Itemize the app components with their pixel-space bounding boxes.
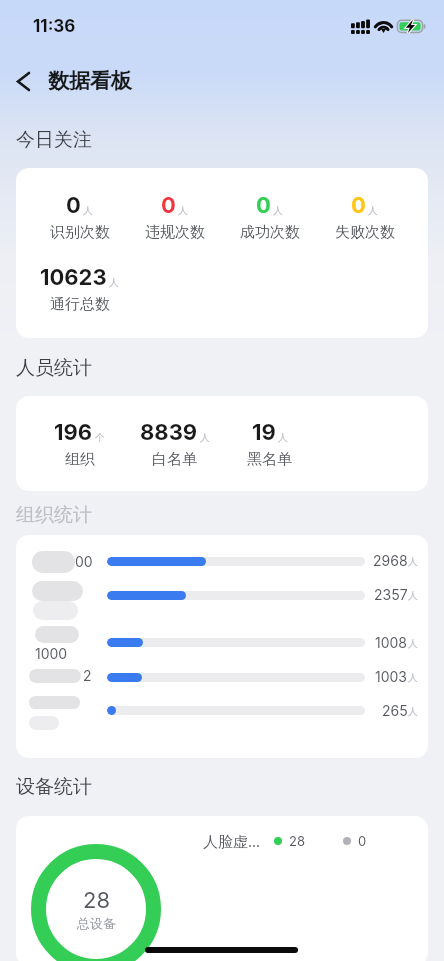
staticText: 组织 xyxy=(65,450,95,469)
staticText: 0 xyxy=(256,192,271,219)
staticText: 265 xyxy=(382,702,408,719)
staticText: 失败次数 xyxy=(335,223,395,242)
staticText: 人 xyxy=(178,204,188,217)
staticText: 2 xyxy=(83,667,92,684)
staticText: 识别次数 xyxy=(50,223,110,242)
staticText: 数据看板 xyxy=(48,68,132,94)
staticText: 白名单 xyxy=(152,450,197,469)
staticText: 黑名单 xyxy=(247,450,292,469)
button[interactable]: 0 xyxy=(16,168,428,338)
staticText: 2968 xyxy=(373,552,408,569)
staticText: 196 xyxy=(54,419,93,446)
staticText: 28 xyxy=(289,833,305,849)
staticText: 00 xyxy=(75,553,93,570)
staticText: 设备统计 xyxy=(16,775,92,799)
staticText: 组织统计 xyxy=(16,503,92,527)
staticText: 今日关注 xyxy=(16,128,92,152)
staticText: 人 xyxy=(408,589,418,602)
staticText: 人员统计 xyxy=(16,356,92,380)
staticText: 11:36 xyxy=(33,16,76,37)
button[interactable]: 人脸虚... xyxy=(16,816,428,961)
staticText: 人 xyxy=(408,555,418,568)
staticText: 2357 xyxy=(374,586,408,603)
staticText: 个 xyxy=(95,431,105,444)
staticText: 成功次数 xyxy=(240,223,300,242)
button[interactable]: 2968 xyxy=(16,535,428,758)
staticText: 人 xyxy=(109,276,119,289)
staticText: 违规次数 xyxy=(145,223,205,242)
staticText: 1008 xyxy=(375,634,408,651)
staticText: 人 xyxy=(200,431,210,444)
staticText: 19 xyxy=(252,419,276,446)
staticText: 总设备 xyxy=(77,915,116,931)
staticText: 0 xyxy=(66,192,81,219)
staticText: 1003 xyxy=(375,668,408,685)
staticText: 人 xyxy=(368,204,378,217)
staticText: 1000 xyxy=(35,645,68,662)
staticText: 人 xyxy=(278,431,288,444)
staticText: 通行总数 xyxy=(50,295,110,314)
button[interactable]: Back xyxy=(2,60,44,102)
staticText: 0 xyxy=(161,192,176,219)
staticText: 0 xyxy=(358,833,367,849)
staticText: 10623 xyxy=(40,264,107,291)
staticText: 8839 xyxy=(140,419,198,446)
button[interactable]: 196 xyxy=(16,396,428,491)
staticText: 人 xyxy=(408,671,418,684)
staticText: 0 xyxy=(351,192,366,219)
staticText: 人 xyxy=(408,637,418,650)
staticText: 28 xyxy=(83,887,111,914)
staticText: 人脸虚... xyxy=(203,831,261,851)
staticText: 人 xyxy=(273,204,283,217)
staticText: 人 xyxy=(408,705,418,718)
staticText: 人 xyxy=(83,204,93,217)
